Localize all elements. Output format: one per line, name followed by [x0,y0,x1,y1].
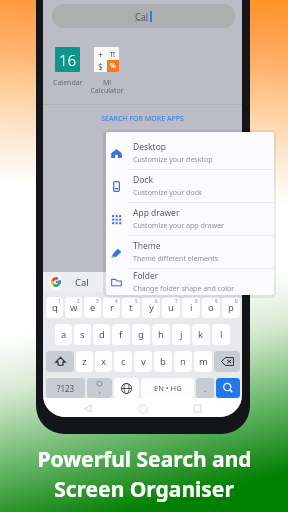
button[interactable]: Home [133,399,152,417]
staticText: 1 [58,298,61,304]
button[interactable]: r [103,297,120,318]
button[interactable]: a [55,324,72,345]
button[interactable]: . [196,378,214,398]
staticText: App drawer [133,207,180,219]
staticText: . [204,383,207,394]
button[interactable]: Calendar [55,47,80,72]
staticText: 5 [135,298,138,304]
button[interactable]: Back [79,399,98,417]
button[interactable]: s [74,324,91,345]
staticText: b [160,355,166,368]
staticText: Cal [135,10,149,22]
staticText: d [99,328,105,341]
button[interactable]: d [93,324,110,345]
staticText: z [82,355,87,368]
button[interactable]: Change language [114,378,139,398]
staticText: h [158,328,164,341]
staticText: Screen Organiser [54,475,234,504]
button[interactable]: m [194,351,212,372]
button[interactable]: Dock [106,170,274,202]
staticText: π [110,48,116,59]
staticText: Mi Calculator [90,78,124,95]
button[interactable]: l [212,324,230,345]
staticText: v [141,355,146,368]
staticText: c [121,355,126,368]
staticText: , [99,386,101,396]
staticText: 2 [77,298,80,304]
staticText: Folder [133,270,159,282]
staticText: Theme [133,240,161,252]
button[interactable]: q [46,297,63,318]
staticText: 9 [215,298,218,304]
staticText: Dock [133,174,153,186]
staticText: q [52,301,58,314]
staticText: o [208,301,214,314]
staticText: g [138,328,144,341]
staticText: f [119,328,123,341]
button[interactable]: Folder [106,269,274,295]
button[interactable]: j [172,324,190,345]
button[interactable]: Backspace [214,351,240,372]
staticText: % [110,61,116,71]
staticText: p [228,301,234,314]
button[interactable]: SEARCH FOR MORE APPS [43,112,242,126]
button[interactable]: g [132,324,150,345]
staticText: l [220,328,223,341]
staticText: 4 [115,298,118,304]
staticText: Theme different elements [133,254,219,264]
button[interactable]: c [114,351,132,372]
button[interactable]: p [222,297,240,318]
staticText: + [98,48,104,60]
staticText: m [199,355,208,368]
button[interactable]: Shift [46,351,74,372]
staticText: Calendar [53,78,83,88]
staticText: a [61,328,67,341]
button[interactable]: f [112,324,130,345]
staticText: s [80,328,85,341]
button[interactable]: o [202,297,220,318]
staticText: e [90,301,96,314]
button[interactable]: App drawer [106,203,274,235]
staticText: w [70,301,78,314]
staticText: u [168,301,174,314]
staticText: Customize your desktop [133,155,213,165]
staticText: 3 [96,298,99,304]
staticText: ?123 [57,383,75,394]
staticText: Powerful Search and [37,445,252,474]
staticText: r [110,301,114,314]
staticText: 7 [175,298,178,304]
staticText: Desktop [133,141,167,153]
staticText: n [180,355,186,368]
button[interactable]: b [154,351,172,372]
button[interactable]: Cal [52,4,235,28]
button[interactable]: k [192,324,210,345]
staticText: Change folder shape and color [133,284,235,294]
button[interactable]: y [142,297,160,318]
staticText: $ [98,61,103,72]
button[interactable]: h [152,324,170,345]
button[interactable]: EN • HG [141,378,194,398]
staticText: 0 [235,298,238,304]
button[interactable]: t [122,297,140,318]
button[interactable]: v [134,351,152,372]
button[interactable]: u [162,297,180,318]
button[interactable]: Mi Calculator [94,47,119,72]
staticText: Cal [75,276,89,289]
staticText: 6 [155,298,158,304]
button[interactable]: i [182,297,200,318]
button[interactable]: e [84,297,101,318]
button[interactable]: x [95,351,112,372]
button[interactable]: n [174,351,192,372]
button[interactable]: w [65,297,82,318]
button[interactable]: Recents [188,399,207,417]
button[interactable]: Desktop [106,137,274,169]
button[interactable]: ?123 [46,378,85,398]
staticText: y [149,301,154,314]
button[interactable]: z [76,351,93,372]
button[interactable]: , [87,378,112,398]
staticText: k [198,328,204,341]
staticText: 8 [195,298,198,304]
button[interactable]: Theme [106,236,274,268]
button[interactable]: Search [216,378,240,398]
staticText: i [190,301,193,314]
